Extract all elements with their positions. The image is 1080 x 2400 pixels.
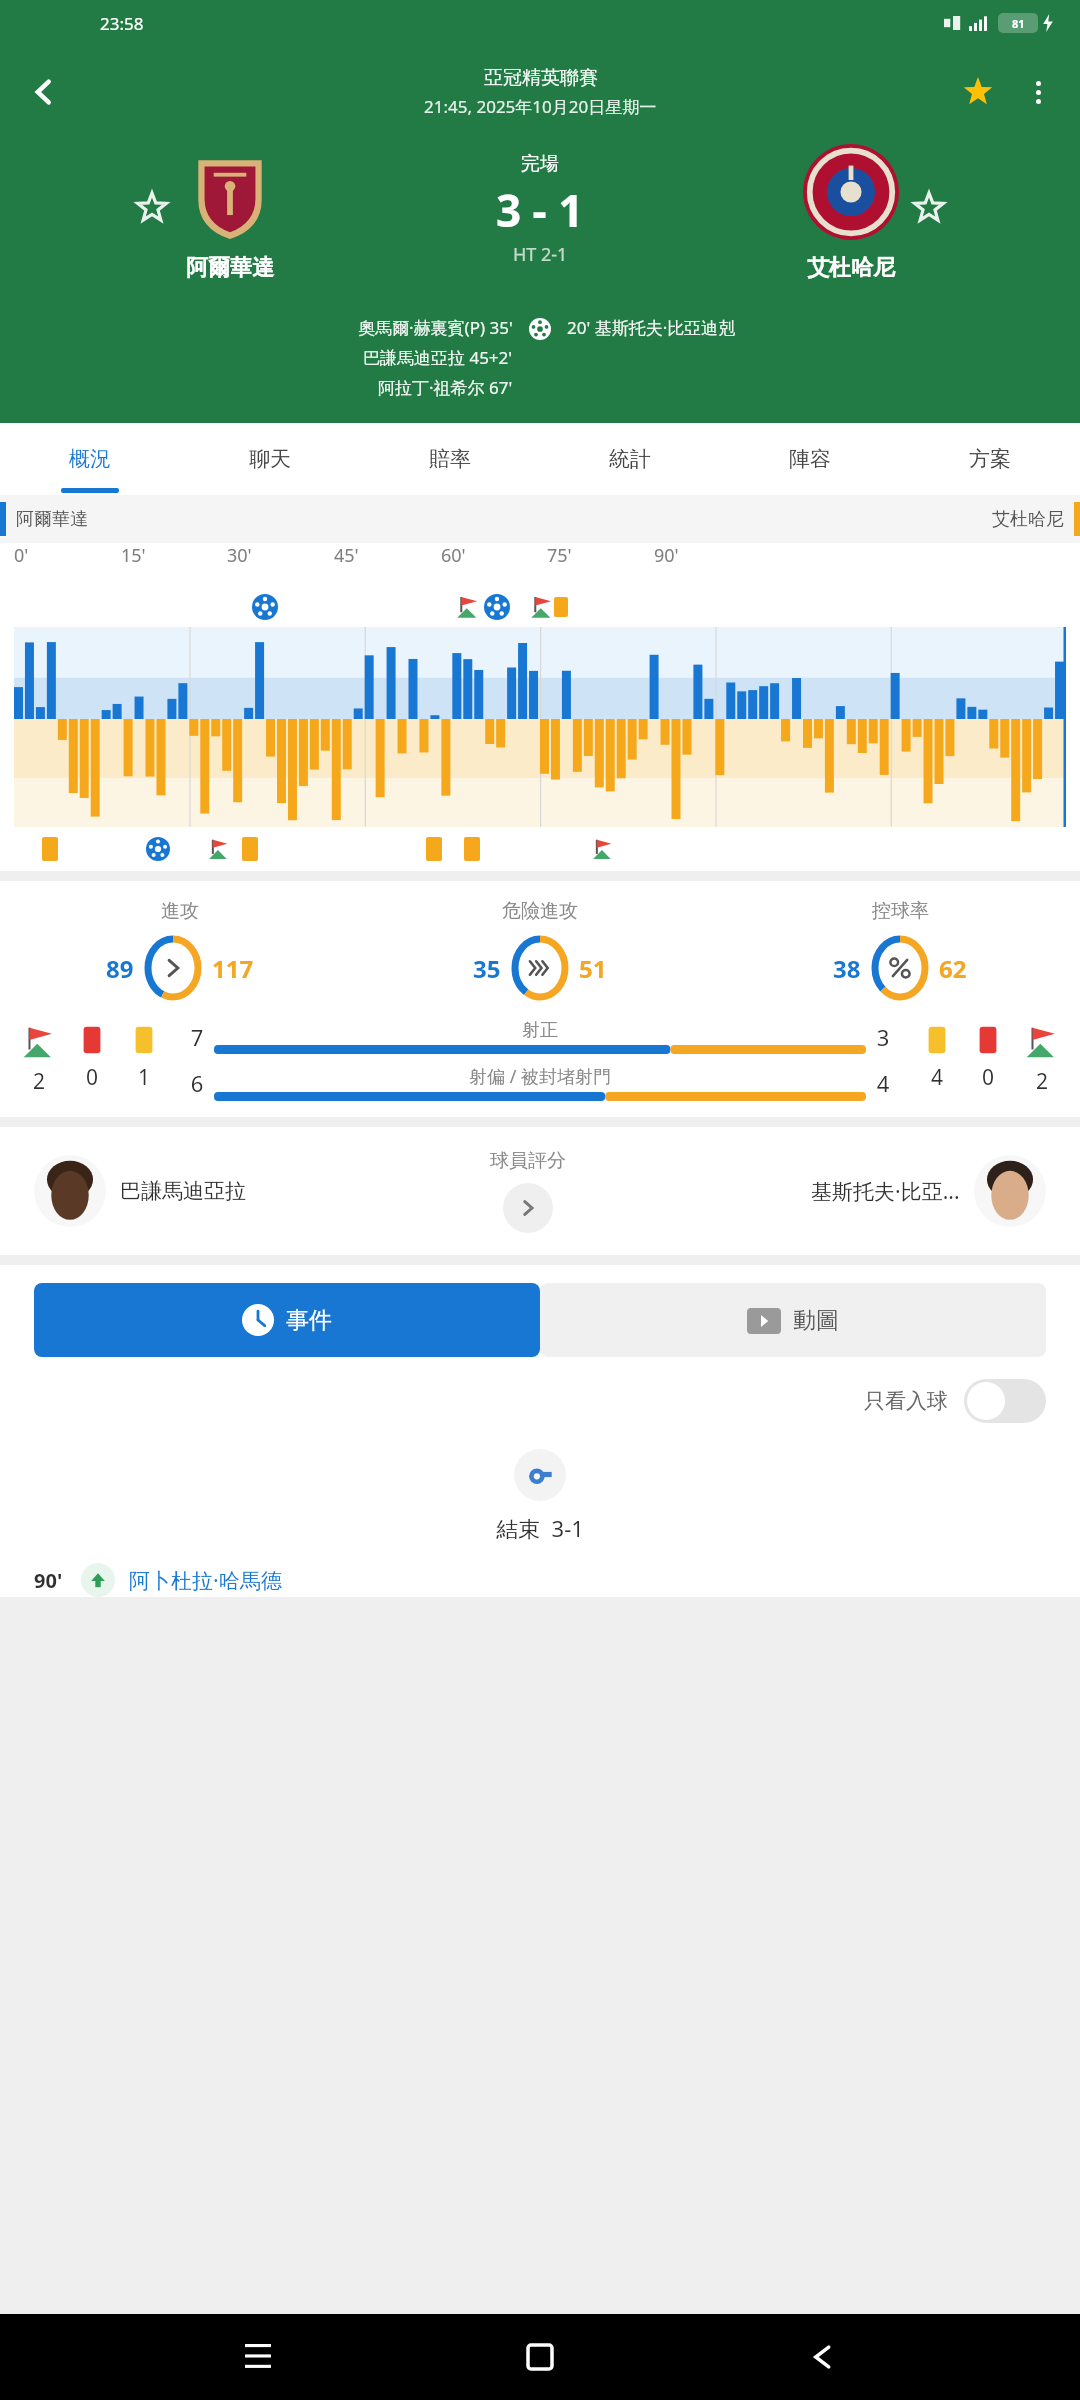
staticText: 0' <box>14 543 29 568</box>
staticText: 陣容 <box>789 446 831 472</box>
staticText: 聊天 <box>249 446 291 472</box>
button[interactable]: Recents <box>233 2332 283 2382</box>
staticText: 賠率 <box>429 446 471 472</box>
staticText: 艾杜哈尼 <box>807 254 895 282</box>
staticText: 30' <box>227 543 252 568</box>
staticText: 統計 <box>609 446 651 472</box>
staticText: 21:45, 2025年10月20日星期一 <box>424 95 657 118</box>
button[interactable]: 動圖 <box>540 1283 1046 1357</box>
button[interactable]: 陣容 <box>720 423 900 495</box>
staticText: 6 <box>180 1068 214 1098</box>
staticText: 38 <box>833 952 861 985</box>
button[interactable]: Home <box>515 2332 565 2382</box>
staticText: 進攻 <box>161 899 199 923</box>
staticText: 亞冠精英聯賽 <box>484 66 598 90</box>
staticText: 阿爾華達 <box>186 254 274 282</box>
staticText: 射偏 / 被封堵射門 <box>214 1064 866 1089</box>
button[interactable]: Back <box>798 2332 848 2382</box>
staticText: 球員評分 <box>490 1149 566 1173</box>
button[interactable]: 方案 <box>900 423 1080 495</box>
button[interactable]: 統計 <box>540 423 720 495</box>
staticText: 危險進攻 <box>502 899 578 923</box>
staticText: 3 <box>866 1022 900 1052</box>
staticText: 巴謙馬迪亞拉 45+2' <box>363 346 513 369</box>
staticText: 方案 <box>969 446 1011 472</box>
staticText: 3 - 1 <box>496 180 584 240</box>
staticText: 4 <box>866 1068 900 1098</box>
staticText: 概況 <box>69 446 111 472</box>
button[interactable]: 賠率 <box>360 423 540 495</box>
staticText: 15' <box>121 543 146 568</box>
staticText: 2 <box>1036 1067 1049 1096</box>
staticText: 4 <box>931 1063 944 1092</box>
staticText: 20' 基斯托夫·比亞迪剋 <box>567 316 736 339</box>
staticText: 奧馬爾·赫裏賓(P) 35' <box>358 316 513 339</box>
staticText: 23:58 <box>100 12 144 35</box>
staticText: 35 <box>473 952 501 985</box>
button[interactable]: Favourite away team <box>905 184 953 232</box>
button[interactable]: 只看入球 <box>0 1379 1046 1423</box>
staticText: HT 2-1 <box>513 242 568 267</box>
staticText: 0 <box>86 1063 99 1092</box>
staticText: 2 <box>33 1067 46 1096</box>
staticText: 射正 <box>214 1019 866 1042</box>
staticText: 艾杜哈尼 <box>992 508 1064 531</box>
staticText: 1 <box>138 1063 151 1092</box>
staticText: 0 <box>982 1063 995 1092</box>
button[interactable]: 巴謙馬迪亞拉 <box>0 1127 1080 1255</box>
staticText: 90' <box>654 543 679 568</box>
staticText: 75' <box>547 543 572 568</box>
button[interactable]: Back <box>16 64 72 120</box>
button[interactable]: 概況 <box>0 423 180 495</box>
staticText: 90' <box>34 1567 63 1594</box>
button[interactable]: Favourite <box>952 66 1004 118</box>
staticText: 7 <box>180 1022 214 1052</box>
staticText: 阿拉丁·祖希尔 67' <box>378 376 513 399</box>
staticText: 阿爾華達 <box>16 508 88 531</box>
button[interactable]: More options <box>1014 68 1062 116</box>
staticText: 117 <box>212 952 254 985</box>
staticText: 控球率 <box>872 899 929 923</box>
staticText: 只看入球 <box>864 1388 948 1414</box>
staticText: 動圖 <box>793 1306 839 1335</box>
staticText: 62 <box>939 952 967 985</box>
staticText: 阿卜杜拉·哈馬德 <box>129 1566 282 1595</box>
staticText: 巴謙馬迪亞拉 <box>120 1178 246 1204</box>
button[interactable]: Favourite home team <box>128 184 176 232</box>
button[interactable]: 聊天 <box>180 423 360 495</box>
staticText: 89 <box>106 952 134 985</box>
staticText: 45' <box>334 543 359 568</box>
staticText: 81 <box>1012 16 1025 31</box>
staticText: 結束 3-1 <box>0 1513 1080 1543</box>
staticText: 事件 <box>286 1306 332 1335</box>
staticText: 基斯托夫·比亞... <box>811 1177 960 1206</box>
staticText: 60' <box>441 543 466 568</box>
staticText: 51 <box>579 952 607 985</box>
staticText: 完場 <box>521 152 559 176</box>
button[interactable]: 事件 <box>34 1283 540 1357</box>
